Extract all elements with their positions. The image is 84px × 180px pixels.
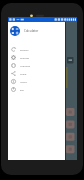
staticText: Calculator — [24, 29, 39, 33]
button[interactable]: Settings — [8, 53, 65, 61]
staticText: Share — [20, 72, 27, 75]
staticText: Exit — [20, 88, 25, 91]
staticText: Refresh — [20, 48, 29, 51]
staticText: About — [20, 80, 27, 83]
staticText: Theming — [20, 64, 30, 67]
other: Calculator app icon — [10, 26, 20, 36]
button[interactable]: Exit — [8, 85, 65, 93]
button[interactable]: Theming — [8, 61, 65, 69]
staticText: Settings — [20, 56, 30, 59]
button[interactable]: Refresh — [8, 45, 65, 53]
button[interactable]: About — [8, 77, 65, 85]
button[interactable]: Share — [8, 69, 65, 77]
